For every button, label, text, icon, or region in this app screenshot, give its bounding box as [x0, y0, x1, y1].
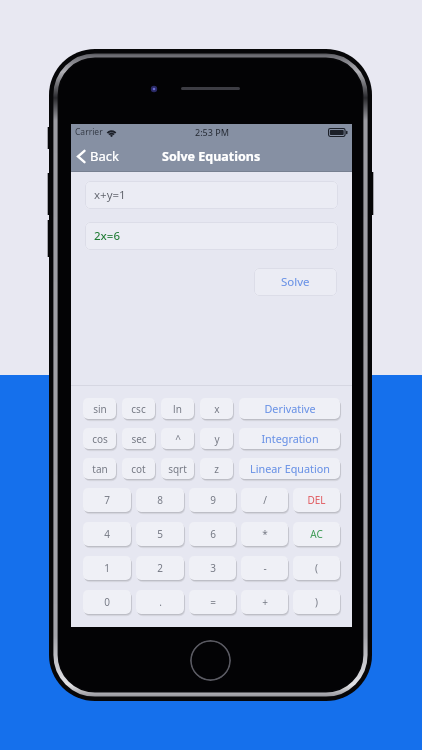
button[interactable]: 7 [83, 488, 131, 512]
staticText: x [214, 402, 220, 416]
button[interactable]: ) [293, 590, 340, 614]
button[interactable]: cot [122, 458, 155, 479]
staticText: ln [173, 402, 182, 416]
staticText: 3 [210, 561, 216, 575]
button[interactable]: Back [76, 140, 119, 172]
staticText: 2:53 PM [195, 126, 229, 138]
button[interactable]: y [200, 428, 233, 449]
button[interactable]: 4 [83, 522, 131, 546]
button[interactable]: z [200, 458, 233, 479]
staticText: tan [92, 462, 108, 476]
staticText: ( [315, 561, 318, 575]
button[interactable]: 6 [189, 522, 236, 546]
staticText: 0 [104, 595, 110, 609]
button[interactable]: csc [122, 398, 155, 419]
button[interactable]: cos [83, 428, 116, 449]
button[interactable]: 9 [189, 488, 236, 512]
staticText: cos [92, 432, 108, 446]
staticText: ) [315, 595, 318, 609]
staticText: Solve Equations [162, 148, 261, 165]
button[interactable]: 0 [83, 590, 131, 614]
staticText: DEL [307, 493, 326, 507]
staticText: Derivative [264, 401, 316, 416]
staticText: Integration [261, 431, 319, 446]
button[interactable]: x [200, 398, 233, 419]
button[interactable]: tan [83, 458, 116, 479]
button[interactable]: . [136, 590, 184, 614]
staticText: csc [131, 402, 146, 416]
button[interactable]: * [241, 522, 288, 546]
button[interactable]: DEL [293, 488, 340, 512]
staticText: Linear Equation [250, 461, 330, 476]
button[interactable]: ( [293, 556, 340, 580]
staticText: 2x=6 [94, 228, 120, 244]
staticText: / [263, 493, 267, 507]
staticText: * [262, 527, 268, 541]
button[interactable]: Home [190, 640, 231, 681]
button[interactable]: 2 [136, 556, 184, 580]
button[interactable]: Solve [254, 268, 337, 296]
staticText: y [214, 432, 220, 446]
staticText: 5 [157, 527, 163, 541]
staticText: 7 [104, 493, 110, 507]
button[interactable]: ^ [161, 428, 194, 449]
button[interactable]: 8 [136, 488, 184, 512]
staticText: sqrt [168, 462, 187, 476]
staticText: Back [90, 147, 119, 165]
button[interactable]: - [241, 556, 288, 580]
staticText: 1 [104, 561, 110, 575]
button[interactable]: sec [122, 428, 155, 449]
button[interactable]: = [189, 590, 236, 614]
button[interactable]: 5 [136, 522, 184, 546]
staticText: 6 [210, 527, 216, 541]
staticText: 2 [157, 561, 163, 575]
staticText: sin [93, 402, 107, 416]
staticText: x+y=1 [94, 187, 126, 203]
button[interactable]: AC [293, 522, 340, 546]
button[interactable]: x+y=1 [85, 181, 338, 209]
staticText: Solve [281, 274, 310, 290]
button[interactable]: ln [161, 398, 194, 419]
button[interactable]: Linear Equation [239, 458, 340, 479]
staticText: z [214, 462, 219, 476]
button[interactable]: sin [83, 398, 116, 419]
button[interactable]: Integration [239, 428, 340, 449]
staticText: + [262, 595, 268, 609]
staticText: AC [310, 527, 323, 541]
button[interactable]: / [241, 488, 288, 512]
staticText: sec [131, 432, 147, 446]
staticText: ^ [175, 432, 181, 446]
staticText: 4 [104, 527, 110, 541]
staticText: . [159, 595, 162, 609]
button[interactable]: Derivative [239, 398, 340, 419]
button[interactable]: 3 [189, 556, 236, 580]
staticText: 8 [157, 493, 163, 507]
button[interactable]: sqrt [161, 458, 194, 479]
staticText: 9 [210, 493, 216, 507]
staticText: cot [131, 462, 146, 476]
button[interactable]: 2x=6 [85, 222, 338, 250]
staticText: = [210, 595, 216, 609]
button[interactable]: 1 [83, 556, 131, 580]
staticText: - [263, 561, 267, 575]
staticText: Carrier [75, 126, 103, 138]
button[interactable]: + [241, 590, 288, 614]
